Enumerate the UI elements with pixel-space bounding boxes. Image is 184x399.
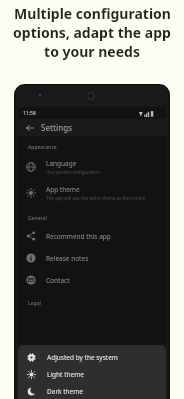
staticText: Appearance: [28, 144, 57, 151]
staticText: 11:58: [23, 110, 36, 117]
button[interactable]: Dark theme: [18, 383, 166, 399]
staticText: App theme: [46, 185, 80, 194]
button[interactable]: Back: [24, 122, 35, 133]
staticText: Legal: [28, 300, 41, 307]
button[interactable]: Release notes: [18, 247, 166, 269]
staticText: Light theme: [47, 370, 84, 379]
staticText: Dark theme: [47, 387, 84, 396]
button[interactable]: Back: [18, 119, 166, 136]
button[interactable]: Recommend this app: [18, 225, 166, 247]
button[interactable]: Light theme: [18, 366, 166, 383]
staticText: Adjusted by the system: [47, 353, 118, 362]
button[interactable]: App theme: [18, 180, 166, 206]
staticText: Use system configuration: [46, 169, 100, 175]
staticText: Release notes: [46, 254, 89, 263]
staticText: Contact: [46, 276, 70, 285]
staticText: to your needs: [44, 42, 140, 61]
button[interactable]: Language: [18, 154, 166, 180]
staticText: Language: [46, 159, 77, 168]
staticText: Settings: [41, 122, 73, 133]
staticText: Multiple configuration: [14, 4, 171, 23]
button[interactable]: Adjusted by the system: [18, 349, 166, 366]
staticText: options, adapt the app: [13, 23, 171, 42]
staticText: Recommend this app: [46, 232, 111, 241]
staticText: The app will use the same theme as the s…: [46, 195, 146, 201]
staticText: General: [28, 215, 47, 222]
button[interactable]: Contact: [18, 269, 166, 291]
